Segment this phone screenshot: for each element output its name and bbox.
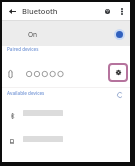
button[interactable]: Device settings — [108, 63, 128, 82]
button[interactable]: Refresh — [114, 89, 125, 100]
staticText: Bluetooth — [22, 6, 58, 16]
button[interactable]: Help — [101, 5, 114, 18]
staticText: On — [28, 30, 38, 39]
button[interactable]: More options — [115, 5, 128, 18]
button[interactable] — [2, 102, 130, 128]
staticText: Paired devices — [7, 46, 39, 52]
button[interactable] — [2, 128, 130, 154]
button[interactable] — [2, 59, 130, 86]
staticText: Available devices — [7, 90, 45, 96]
button[interactable]: Back — [6, 5, 18, 17]
button[interactable]: On — [2, 20, 130, 46]
